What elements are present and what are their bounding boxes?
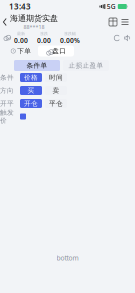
button[interactable]: Back (0, 14, 10, 30)
staticText: 最新 (17, 31, 25, 36)
staticText: 5G (107, 2, 116, 11)
button[interactable]: 止损止盈单 (63, 60, 109, 71)
button[interactable]: 买 (20, 86, 42, 95)
button[interactable]: Trigger price (20, 113, 26, 119)
staticText: 0.00 (37, 36, 51, 45)
button[interactable]: 平仓 (45, 99, 67, 108)
button[interactable]: 时间 (45, 73, 67, 82)
staticText: 止损止盈单 (68, 61, 103, 70)
button[interactable]: Menu (119, 15, 131, 29)
staticText: 触发价 (0, 108, 14, 125)
staticText: 平仓 (49, 99, 63, 108)
staticText: bottom (56, 254, 78, 262)
staticText: 方向 (0, 86, 14, 95)
button[interactable]: 价格 (20, 73, 42, 82)
button[interactable]: 盘口 (38, 45, 74, 56)
staticText: 开仓 (24, 99, 38, 108)
button[interactable]: 开仓 (20, 99, 42, 108)
staticText: 条件单 (26, 61, 47, 70)
button[interactable]: 卖 (45, 86, 67, 95)
staticText: 海通期货实盘 (10, 13, 58, 23)
staticText: 卖 (52, 86, 59, 95)
staticText: 下单 (17, 47, 31, 55)
staticText: 买 (27, 86, 34, 95)
staticText: 13:43 (9, 1, 31, 12)
button[interactable]: 下单 (4, 45, 38, 56)
button[interactable]: Layout (107, 15, 119, 29)
staticText: 时间 (49, 73, 63, 82)
staticText: 88***18 (23, 23, 44, 30)
button[interactable]: Sound (123, 34, 132, 42)
staticText: 盘口 (52, 47, 66, 55)
staticText: 涨跌幅 (64, 31, 76, 36)
button[interactable]: 条件单 (14, 60, 60, 71)
button[interactable]: Refresh (113, 34, 121, 42)
staticText: 价格 (24, 73, 38, 82)
staticText: 开平 (0, 99, 14, 108)
staticText: 0.00% (60, 36, 80, 45)
staticText: 条件 (0, 73, 14, 82)
staticText: 0.00 (14, 36, 28, 45)
staticText: 涨跌 (40, 31, 48, 36)
